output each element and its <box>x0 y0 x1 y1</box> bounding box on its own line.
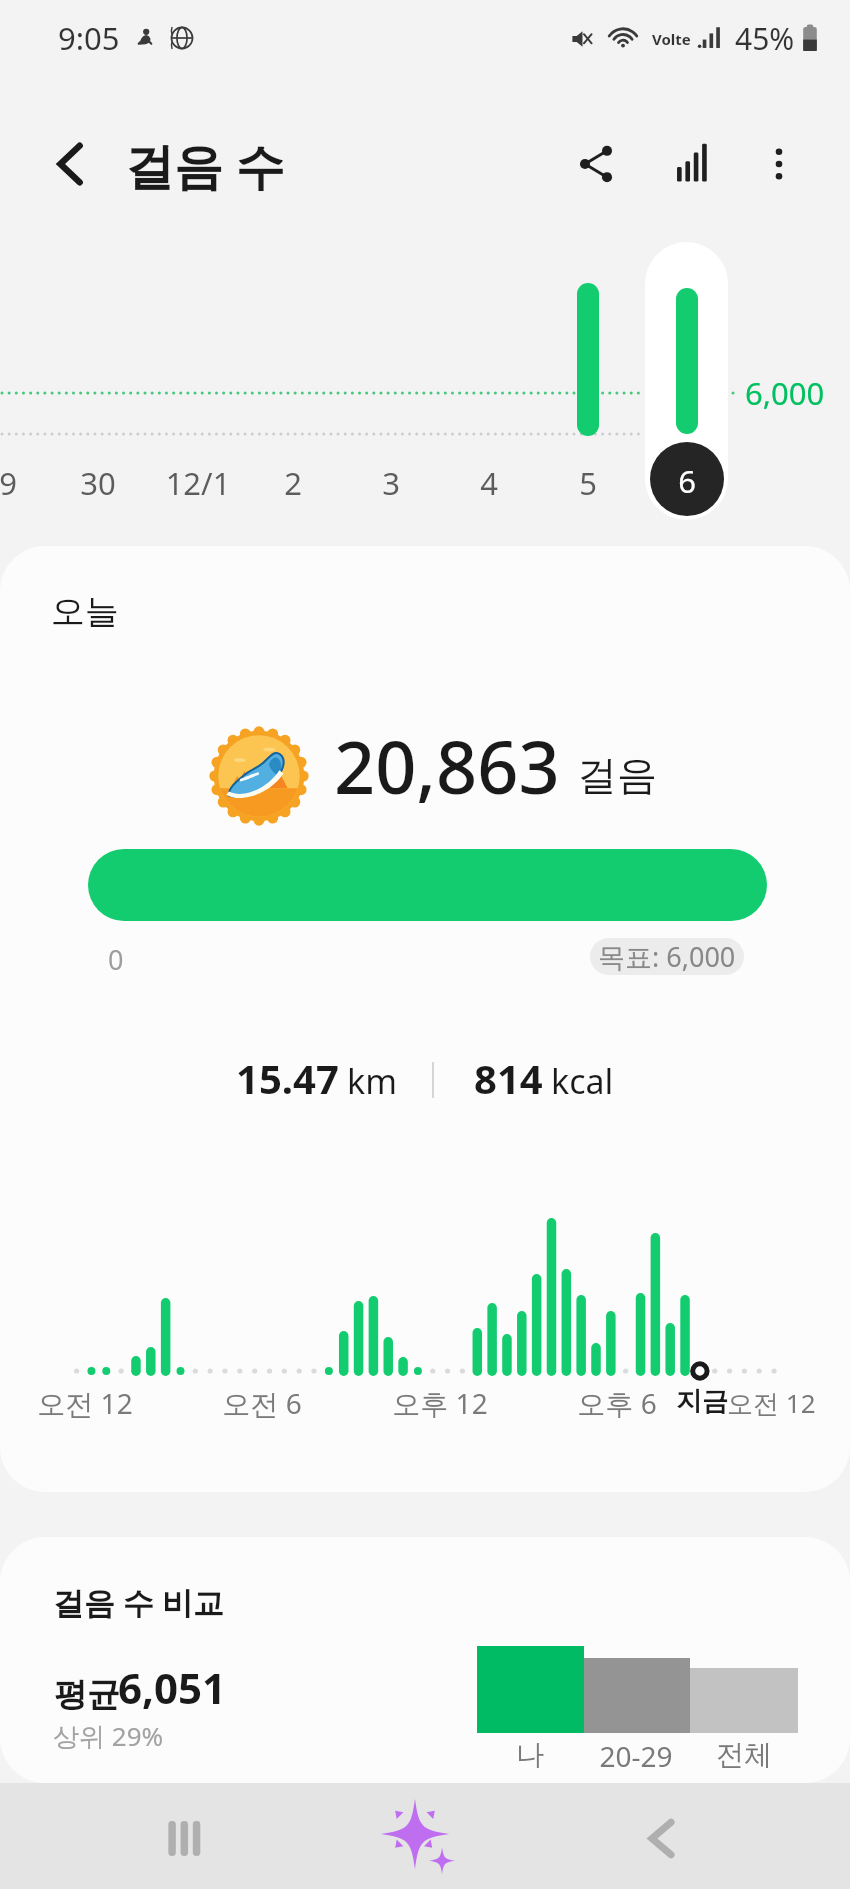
button[interactable]: Recents <box>129 1783 241 1889</box>
button[interactable]: 오늘 <box>0 546 850 1492</box>
staticText: 3 <box>341 462 441 504</box>
staticText: 5 <box>538 462 638 504</box>
staticText: 나 <box>460 1737 600 1772</box>
staticText: 오늘 <box>51 590 119 633</box>
staticText: 6,051 <box>118 1659 227 1716</box>
staticText: 오전 12 <box>0 1384 175 1422</box>
staticText: km <box>347 1058 397 1104</box>
staticText: 30 <box>48 462 148 504</box>
staticText: 목표: 6,000 <box>598 938 736 975</box>
staticText: 걸음 <box>577 750 657 800</box>
staticText: 지금 <box>676 1385 728 1418</box>
staticText: 4 <box>439 462 539 504</box>
staticText: 9 <box>0 462 58 504</box>
staticText: 814 <box>474 1051 543 1105</box>
staticText: 평균 <box>54 1674 120 1716</box>
button[interactable]: More options <box>744 129 814 199</box>
button[interactable]: Chart <box>657 129 727 199</box>
staticText: 15.47 <box>236 1051 339 1105</box>
staticText: kcal <box>551 1058 614 1104</box>
staticText: 오후 12 <box>350 1384 530 1422</box>
staticText: 20-29 <box>566 1737 706 1775</box>
staticText: 20,863 <box>334 717 560 815</box>
staticText: 상위 29% <box>53 1718 164 1754</box>
staticText: 6,000 <box>745 372 825 414</box>
staticText: 오전 6 <box>172 1384 352 1422</box>
button[interactable]: 걸음 수 비교 <box>0 1537 850 1783</box>
staticText: 오전 12 <box>727 1385 816 1421</box>
button[interactable]: Share <box>561 129 631 199</box>
staticText: 2 <box>243 462 343 504</box>
staticText: 12/1 <box>148 462 248 504</box>
button[interactable]: Assistant <box>362 1783 474 1889</box>
staticText: 전체 <box>674 1737 814 1772</box>
staticText: 걸음 수 비교 <box>53 1581 225 1623</box>
staticText: 0 <box>108 941 124 978</box>
staticText: 걸음 수 <box>125 132 285 199</box>
button[interactable]: Back <box>36 129 106 199</box>
staticText: 6 <box>637 460 737 502</box>
staticText: 45% <box>735 18 795 59</box>
staticText: Volte <box>652 29 691 49</box>
button[interactable]: Back <box>605 1783 717 1889</box>
staticText: 오후 6 <box>527 1384 707 1422</box>
staticText: 9:05 <box>58 17 120 59</box>
